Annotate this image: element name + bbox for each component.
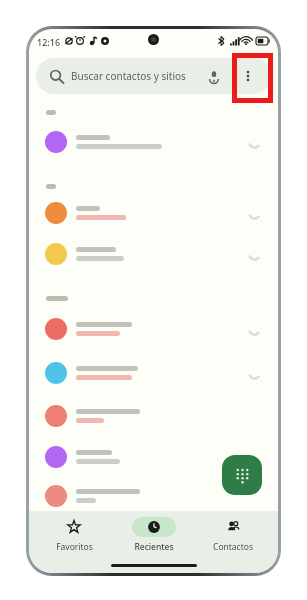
button[interactable]: Call <box>29 195 278 231</box>
button[interactable]: Search <box>36 58 271 94</box>
other: Search <box>49 69 64 84</box>
button[interactable] <box>29 398 278 434</box>
button[interactable]: Contactos <box>198 517 268 553</box>
staticText: Recientes <box>134 541 174 553</box>
button[interactable] <box>29 478 278 514</box>
staticText: Contactos <box>213 541 253 553</box>
button[interactable]: Call <box>244 319 264 339</box>
staticText: Favoritos <box>56 541 93 553</box>
button[interactable]: Call <box>244 244 264 264</box>
button[interactable]: More options <box>234 62 262 90</box>
button[interactable]: Call <box>244 363 264 383</box>
button[interactable]: Call <box>29 124 278 160</box>
button[interactable] <box>29 439 278 475</box>
button[interactable]: Call <box>244 132 264 152</box>
button[interactable]: Recientes <box>119 517 189 553</box>
button[interactable]: Voice search <box>201 63 227 89</box>
button[interactable]: Call <box>29 311 278 347</box>
button[interactable]: Call <box>29 236 278 272</box>
staticText: Buscar contactos y sitios <box>71 69 186 83</box>
button[interactable]: Dial pad <box>222 455 262 495</box>
staticText: 12:16 <box>37 36 61 48</box>
button[interactable]: Call <box>29 355 278 391</box>
button[interactable]: Favoritos <box>39 517 109 553</box>
button[interactable]: Call <box>244 203 264 223</box>
